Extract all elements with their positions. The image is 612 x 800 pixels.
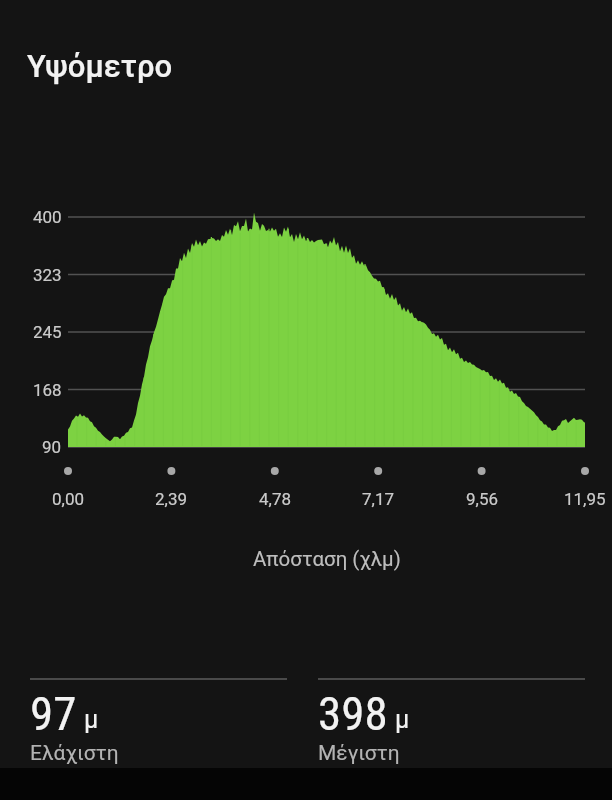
staticText: 9,56: [466, 489, 499, 509]
staticText: 398: [318, 686, 388, 741]
staticText: 4,78: [259, 489, 292, 509]
staticText: 7,17: [362, 489, 395, 509]
button[interactable]: 398: [318, 678, 585, 766]
staticText: Απόσταση (χλμ): [253, 547, 401, 571]
staticText: μ: [395, 705, 410, 734]
staticText: Ελάχιστη: [30, 741, 119, 766]
button[interactable]: 97: [30, 678, 287, 766]
staticText: μ: [84, 705, 99, 734]
staticText: 11,95: [564, 489, 606, 509]
staticText: 400: [33, 207, 62, 227]
staticText: 2,39: [155, 489, 188, 509]
staticText: Υψόμετρο: [27, 48, 173, 84]
staticText: 323: [33, 265, 62, 285]
staticText: 245: [33, 322, 62, 342]
staticText: 97: [30, 686, 77, 741]
staticText: 168: [33, 380, 62, 400]
staticText: 0,00: [52, 489, 85, 509]
staticText: 90: [42, 437, 62, 457]
staticText: Μέγιστη: [318, 741, 400, 766]
